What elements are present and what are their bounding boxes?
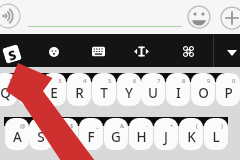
button[interactable]: ) <box>204 118 228 150</box>
staticText: 0 <box>232 77 236 85</box>
button[interactable]: Voice input <box>0 3 21 29</box>
staticText: T <box>100 84 108 102</box>
button[interactable]: 4 <box>67 73 91 106</box>
button[interactable]: Cursor control <box>120 34 162 67</box>
staticText: S <box>6 45 18 63</box>
button[interactable]: & <box>104 118 128 150</box>
staticText: + <box>170 122 174 130</box>
staticText: $ <box>70 122 74 130</box>
button[interactable]: 5 <box>92 73 116 106</box>
staticText: Y <box>125 84 133 102</box>
button[interactable]: - <box>129 118 153 150</box>
button[interactable]: Keyboard layout <box>77 34 119 67</box>
staticText: A <box>13 128 22 146</box>
staticText: 7 <box>157 77 161 85</box>
staticText: G <box>111 128 121 146</box>
staticText: @ <box>20 122 26 130</box>
button[interactable]: Clipboard <box>167 34 209 67</box>
button[interactable]: 2 <box>18 73 42 106</box>
staticText: 5 <box>108 77 112 85</box>
staticText: - <box>146 122 148 130</box>
staticText: 8 <box>182 77 186 85</box>
button[interactable]: 6 <box>117 73 141 106</box>
button[interactable]: 8 <box>166 73 190 106</box>
staticText: E <box>50 84 58 102</box>
button[interactable]: _ <box>79 118 103 150</box>
staticText: 4 <box>83 77 87 85</box>
staticText: L <box>212 128 220 146</box>
staticText: Q <box>0 84 11 102</box>
button[interactable]: 7 <box>141 73 165 106</box>
staticText: _ <box>96 122 99 130</box>
button[interactable]: $ <box>54 118 78 150</box>
staticText: U <box>148 84 158 102</box>
staticText: & <box>120 122 125 130</box>
staticText: ( <box>196 122 198 130</box>
staticText: 9 <box>207 77 211 85</box>
button[interactable]: # <box>29 118 53 150</box>
button[interactable]: Add attachment <box>218 4 240 32</box>
staticText: 3 <box>58 77 62 85</box>
button[interactable]: Hide keyboard <box>218 34 240 67</box>
button[interactable]: 1 <box>0 73 17 106</box>
staticText: O <box>198 84 209 102</box>
button[interactable]: @ <box>5 118 29 150</box>
staticText: ) <box>221 122 223 130</box>
staticText: 6 <box>133 77 137 85</box>
button[interactable]: SwiftKey menu <box>0 34 33 67</box>
staticText: R <box>75 84 84 102</box>
button[interactable]: ( <box>179 118 203 150</box>
staticText: J <box>164 128 168 146</box>
button[interactable]: 0 <box>216 73 240 106</box>
button[interactable]: 9 <box>191 73 215 106</box>
staticText: S <box>37 128 45 146</box>
staticText: I <box>176 84 181 102</box>
button[interactable]: 3 <box>42 73 66 106</box>
button[interactable]: Emoji <box>185 3 213 31</box>
staticText: K <box>187 128 196 146</box>
button[interactable]: + <box>154 118 178 150</box>
button[interactable]: Stickers <box>33 34 75 67</box>
staticText: H <box>136 128 147 146</box>
staticText: F <box>87 128 95 146</box>
staticText: 1 <box>9 77 13 85</box>
staticText: P <box>224 84 233 102</box>
